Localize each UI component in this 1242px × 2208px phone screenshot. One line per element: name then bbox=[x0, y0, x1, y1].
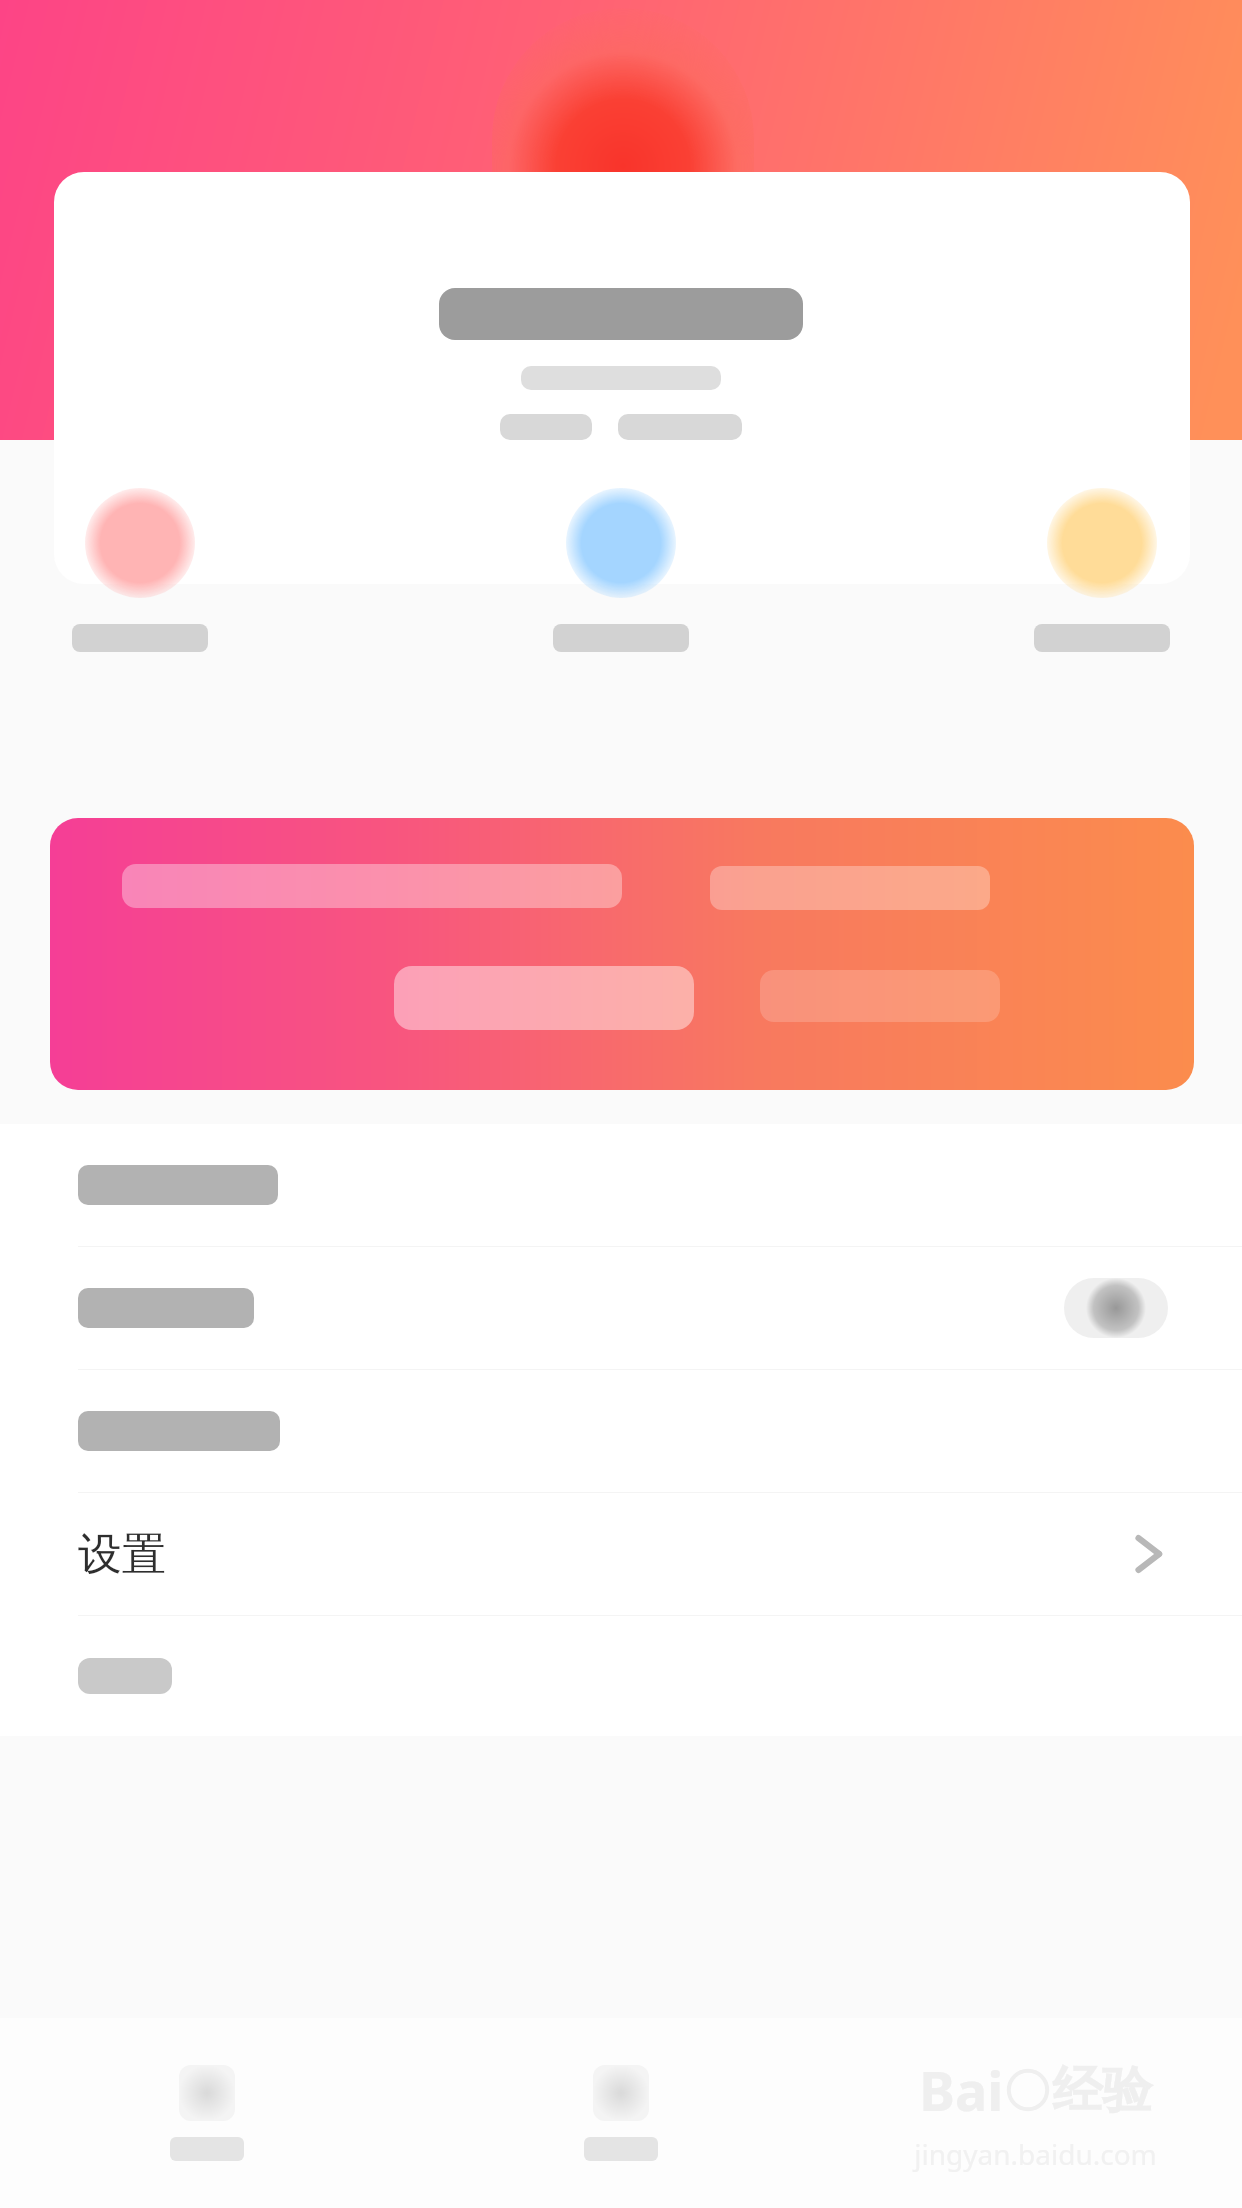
button[interactable] bbox=[0, 1616, 1242, 1736]
button[interactable]: 设置 bbox=[0, 1493, 1242, 1615]
button[interactable]: 首页 bbox=[0, 2018, 414, 2208]
button[interactable]: 我的订单 bbox=[66, 482, 214, 658]
button[interactable] bbox=[0, 1370, 1242, 1492]
button[interactable]: 我的 bbox=[414, 2018, 828, 2208]
button[interactable]: 我的收藏 bbox=[547, 482, 695, 658]
button[interactable] bbox=[0, 1247, 1242, 1369]
staticText: 经验 bbox=[1052, 2059, 1152, 2122]
button[interactable] bbox=[0, 1124, 1242, 1246]
staticText: 设置 bbox=[78, 1527, 166, 1582]
staticText: Bai bbox=[919, 2053, 1004, 2127]
button[interactable]: 会员活动横幅 bbox=[50, 818, 1194, 1090]
staticText: jingyan.baidu.com bbox=[914, 2135, 1157, 2173]
button[interactable]: 我的消息 bbox=[1028, 482, 1176, 658]
